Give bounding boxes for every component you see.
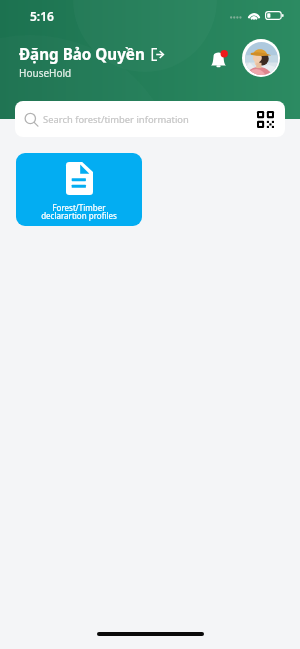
- button[interactable]: Search forest/timber information: [15, 101, 285, 137]
- staticText: Forest/Timber declarartion profiles: [41, 202, 117, 221]
- staticText: Đặng Bảo Quyền: [19, 44, 145, 65]
- staticText: HouseHold: [19, 66, 72, 80]
- button[interactable]: Scan QR code: [257, 111, 274, 128]
- button[interactable]: Profile: [242, 39, 280, 77]
- button[interactable]: Log out: [145, 42, 169, 66]
- button[interactable]: Notifications: [207, 48, 229, 70]
- button[interactable]: Forest/Timber declarartion profiles: [16, 153, 142, 226]
- staticText: 5:16: [30, 8, 54, 24]
- staticText: Search forest/timber information: [43, 113, 189, 126]
